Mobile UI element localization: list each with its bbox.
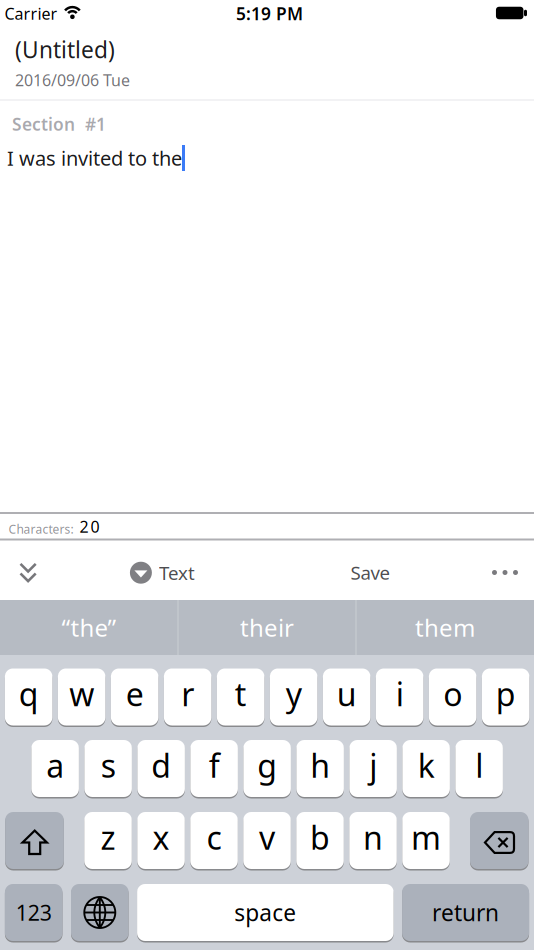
- button[interactable]: d: [137, 739, 185, 798]
- staticText: their: [240, 612, 294, 643]
- button[interactable]: y: [270, 667, 317, 726]
- staticText: u: [337, 673, 357, 715]
- staticText: n: [363, 816, 383, 859]
- staticText: e: [126, 673, 144, 715]
- staticText: f: [209, 744, 220, 787]
- button[interactable]: a: [31, 739, 79, 798]
- staticText: I was invited to the: [7, 145, 182, 171]
- button[interactable]: i: [376, 667, 423, 726]
- button[interactable]: c: [190, 811, 238, 870]
- staticText: m: [411, 816, 441, 859]
- staticText: Carrier: [4, 3, 57, 24]
- staticText: x: [153, 816, 170, 859]
- button[interactable]: b: [296, 811, 344, 870]
- button[interactable]: n: [349, 811, 397, 870]
- staticText: o: [443, 673, 462, 715]
- button[interactable]: o: [429, 667, 476, 726]
- button[interactable]: t: [217, 667, 264, 726]
- staticText: Characters:: [8, 521, 73, 537]
- staticText: 5:19 PM: [236, 2, 303, 25]
- button[interactable]: them: [357, 600, 533, 655]
- staticText: Text: [159, 560, 195, 585]
- staticText: 2016/09/06 Tue: [15, 69, 130, 91]
- button[interactable]: x: [137, 811, 185, 870]
- staticText: return: [432, 897, 499, 927]
- staticText: l: [475, 744, 483, 787]
- staticText: p: [496, 673, 516, 715]
- staticText: Section #1: [12, 112, 106, 135]
- staticText: h: [310, 744, 330, 787]
- staticText: r: [181, 673, 194, 715]
- button[interactable]: u: [323, 667, 370, 726]
- button[interactable]: [470, 811, 528, 870]
- button[interactable]: “the”: [1, 600, 177, 655]
- button[interactable]: r: [164, 667, 211, 726]
- staticText: y: [286, 673, 302, 715]
- staticText: i: [396, 673, 404, 715]
- button[interactable]: [5, 811, 64, 870]
- button[interactable]: m: [402, 811, 450, 870]
- button[interactable]: Text: [130, 551, 195, 595]
- staticText: “the”: [61, 612, 116, 643]
- button[interactable]: p: [482, 667, 529, 726]
- button[interactable]: k: [402, 739, 450, 798]
- staticText: s: [101, 744, 116, 787]
- button[interactable]: space: [137, 883, 394, 942]
- button[interactable]: Save: [335, 550, 405, 594]
- button[interactable]: w: [58, 667, 105, 726]
- staticText: c: [207, 816, 222, 859]
- staticText: 2: [79, 516, 88, 537]
- button[interactable]: [71, 883, 129, 942]
- staticText: g: [257, 744, 277, 787]
- button[interactable]: s: [84, 739, 132, 798]
- button[interactable]: [8, 550, 48, 594]
- staticText: d: [151, 744, 171, 787]
- staticText: 123: [16, 898, 52, 927]
- staticText: 0: [91, 516, 100, 537]
- button[interactable]: e: [111, 667, 158, 726]
- staticText: b: [310, 816, 330, 859]
- button[interactable]: v: [243, 811, 291, 870]
- staticText: Save: [350, 560, 390, 585]
- button[interactable]: g: [243, 739, 291, 798]
- button[interactable]: f: [190, 739, 238, 798]
- staticText: v: [259, 816, 275, 859]
- button[interactable]: h: [296, 739, 344, 798]
- button[interactable]: 123: [5, 883, 62, 942]
- button[interactable]: [483, 550, 527, 594]
- button[interactable]: q: [5, 667, 52, 726]
- button[interactable]: j: [349, 739, 397, 798]
- staticText: t: [235, 673, 247, 715]
- staticText: w: [69, 673, 94, 715]
- staticText: j: [369, 744, 377, 787]
- button[interactable]: l: [455, 739, 503, 798]
- staticText: z: [100, 816, 115, 859]
- button[interactable]: their: [179, 600, 355, 655]
- staticText: a: [46, 744, 64, 787]
- button[interactable]: z: [84, 811, 132, 870]
- staticText: q: [19, 673, 39, 715]
- staticText: (Untitled): [15, 34, 115, 64]
- staticText: them: [415, 612, 475, 643]
- button[interactable]: return: [402, 883, 529, 942]
- staticText: k: [418, 744, 435, 787]
- staticText: space: [234, 897, 296, 927]
